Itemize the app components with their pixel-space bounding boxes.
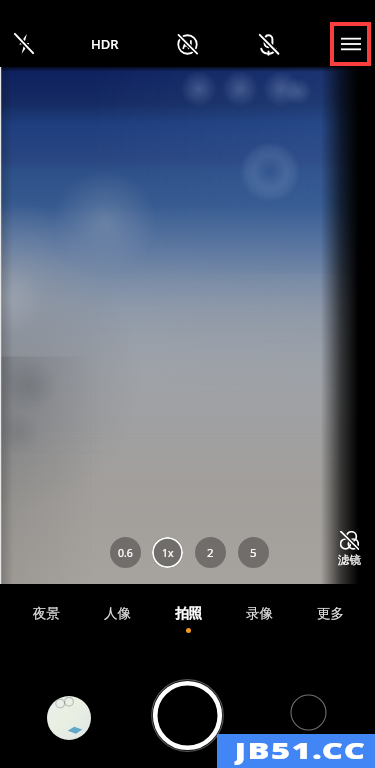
button[interactable]: 更多: [306, 605, 354, 633]
button[interactable]: 拍照: [164, 605, 212, 633]
button[interactable]: Shutter: [151, 679, 224, 752]
staticText: JB51.CC: [234, 734, 367, 766]
button[interactable]: 滤镜: [331, 531, 368, 567]
button[interactable]: 夜景: [22, 605, 70, 633]
staticText: 0.6: [118, 546, 133, 560]
staticText: 1x: [162, 546, 174, 560]
staticText: 更多: [317, 605, 344, 622]
staticText: 录像: [246, 605, 273, 622]
staticText: 夜景: [33, 605, 60, 622]
button[interactable]: Live photo off: [248, 24, 288, 64]
button[interactable]: Gallery: [47, 696, 91, 740]
button[interactable]: AI scene detection off: [167, 24, 207, 64]
button[interactable]: 0.6: [110, 537, 141, 568]
staticText: 拍照: [175, 605, 202, 622]
button[interactable]: 5: [238, 537, 269, 568]
staticText: 滤镜: [338, 553, 361, 567]
staticText: HDR: [91, 35, 119, 53]
staticText: 人像: [104, 605, 131, 622]
staticText: 2: [207, 545, 214, 561]
staticText: 5: [250, 545, 257, 561]
button[interactable]: Menu: [334, 26, 367, 62]
button[interactable]: 录像: [235, 605, 283, 633]
button[interactable]: 1x: [152, 537, 183, 568]
button[interactable]: 2: [195, 537, 226, 568]
button[interactable]: Switch camera: [290, 694, 327, 731]
button[interactable]: Flash off: [4, 24, 44, 64]
button[interactable]: 人像: [93, 605, 141, 633]
button[interactable]: HDR: [85, 24, 125, 64]
